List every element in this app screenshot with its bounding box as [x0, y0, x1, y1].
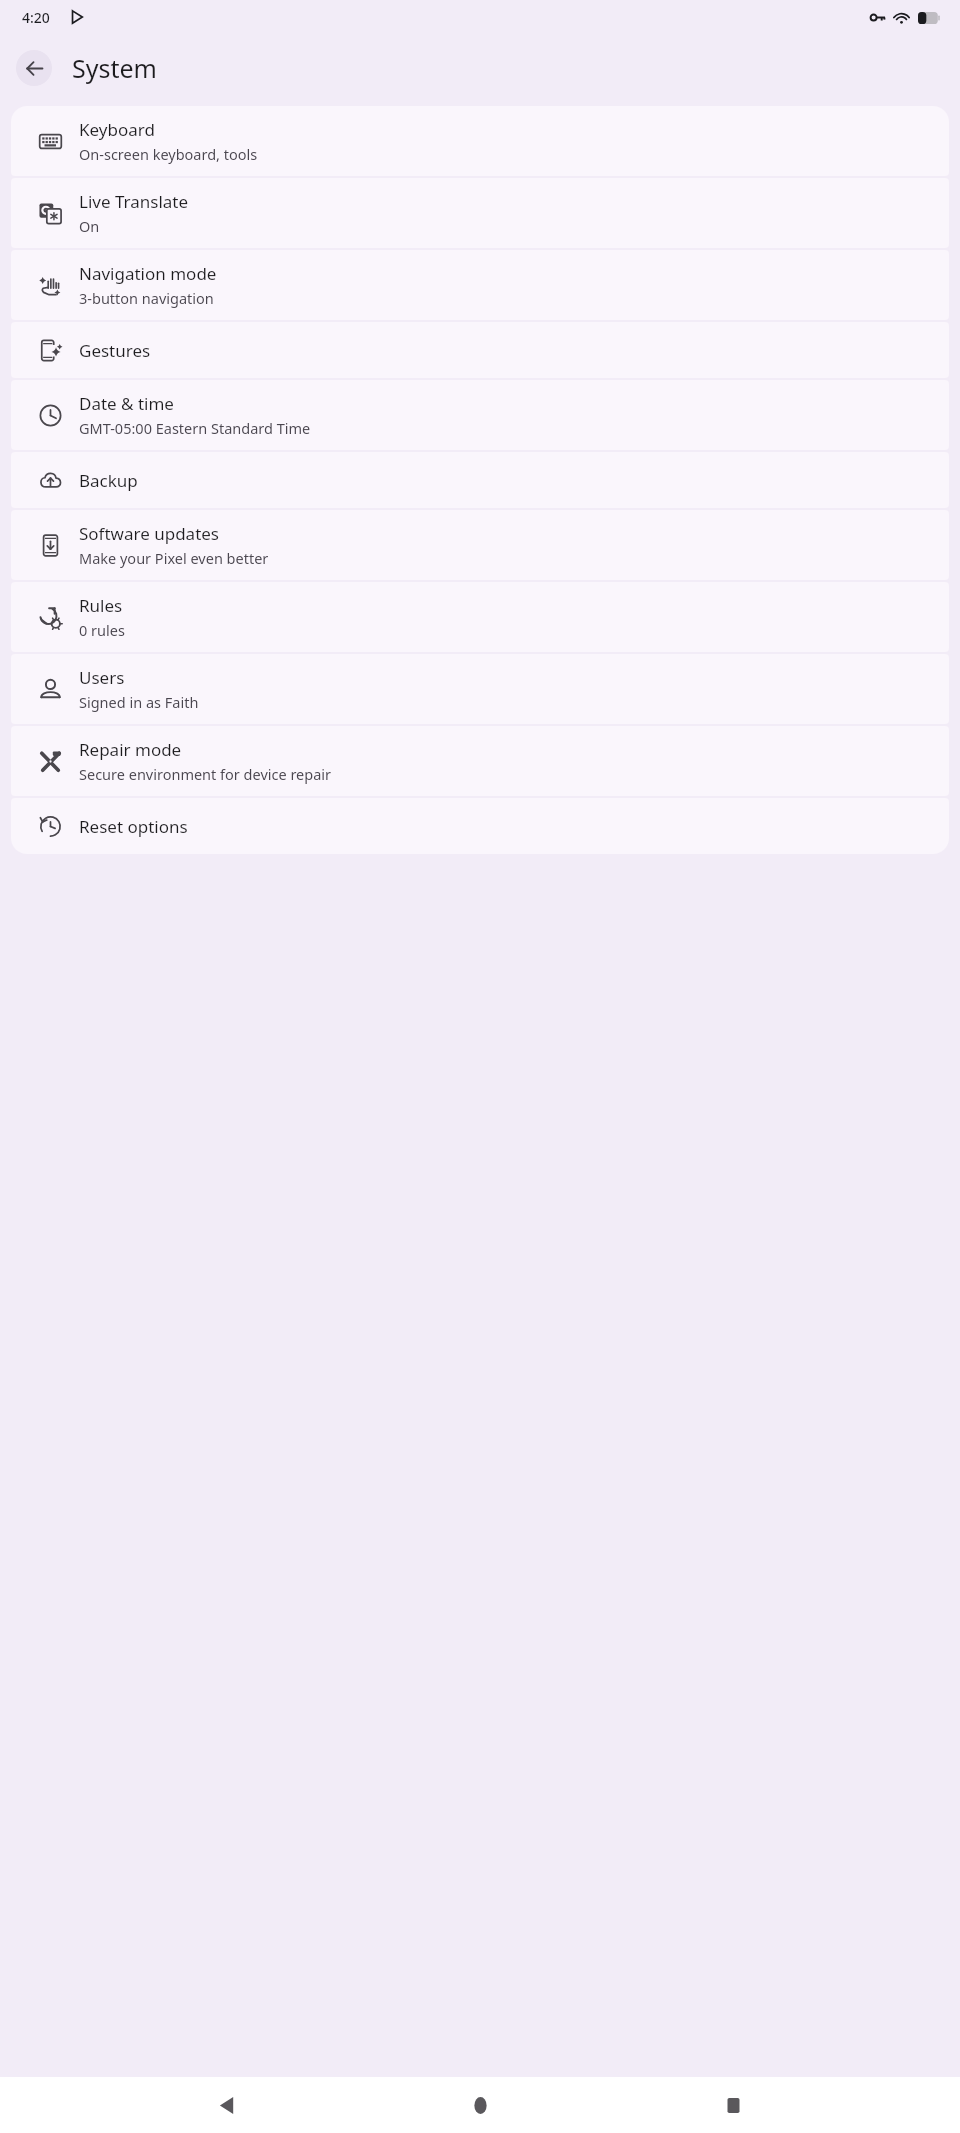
- staticText: On: [79, 216, 100, 236]
- button[interactable]: Navigation mode: [11, 250, 949, 320]
- button[interactable]: Users: [11, 654, 949, 724]
- staticText: 4:20: [22, 8, 50, 27]
- staticText: Signed in as Faith: [79, 692, 199, 712]
- staticText: Make your Pixel even better: [79, 548, 269, 568]
- staticText: GMT-05:00 Eastern Standard Time: [79, 418, 311, 438]
- button[interactable]: Keyboard: [11, 106, 949, 176]
- button[interactable]: Reset options: [11, 798, 949, 854]
- staticText: 0 rules: [79, 620, 125, 640]
- button[interactable]: Recents: [707, 2079, 759, 2131]
- staticText: Navigation mode: [79, 262, 217, 285]
- button[interactable]: Software updates: [11, 510, 949, 580]
- staticText: Repair mode: [79, 738, 182, 761]
- staticText: Gestures: [79, 339, 151, 362]
- staticText: On-screen keyboard, tools: [79, 144, 258, 164]
- button[interactable]: Backup: [11, 452, 949, 508]
- button[interactable]: Live Translate: [11, 178, 949, 248]
- staticText: Rules: [79, 594, 123, 617]
- button[interactable]: Back: [16, 50, 52, 86]
- button[interactable]: Gestures: [11, 322, 949, 378]
- button[interactable]: Rules: [11, 582, 949, 652]
- button[interactable]: Back: [201, 2079, 253, 2131]
- staticText: Live Translate: [79, 190, 189, 213]
- button[interactable]: Date & time: [11, 380, 949, 450]
- staticText: Backup: [79, 469, 138, 492]
- staticText: Reset options: [79, 815, 188, 838]
- staticText: Software updates: [79, 522, 220, 545]
- button[interactable]: Home: [454, 2079, 506, 2131]
- staticText: System: [72, 51, 157, 85]
- staticText: Date & time: [79, 392, 174, 415]
- staticText: Keyboard: [79, 118, 155, 141]
- staticText: 3-button navigation: [79, 288, 214, 308]
- staticText: Users: [79, 666, 125, 689]
- staticText: Secure environment for device repair: [79, 764, 332, 784]
- button[interactable]: Repair mode: [11, 726, 949, 796]
